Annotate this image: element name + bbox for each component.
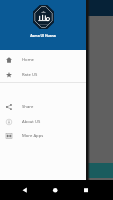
button[interactable]: Rate US <box>0 68 86 82</box>
button[interactable]: Home <box>37 180 75 200</box>
button[interactable]: Share <box>0 100 86 114</box>
button[interactable]: About US <box>0 115 86 129</box>
button[interactable]: Recent apps <box>75 180 113 200</box>
staticText: More Apps <box>22 133 44 139</box>
staticText: Asma Ul Husna <box>30 33 56 38</box>
staticText: Home <box>22 57 34 63</box>
button[interactable]: More Apps <box>0 129 86 143</box>
staticText: About US <box>22 119 41 125</box>
staticText: Rate US <box>22 72 38 78</box>
button[interactable]: Back <box>0 180 37 200</box>
button[interactable]: Home <box>0 53 86 67</box>
staticText: Share <box>22 104 34 110</box>
